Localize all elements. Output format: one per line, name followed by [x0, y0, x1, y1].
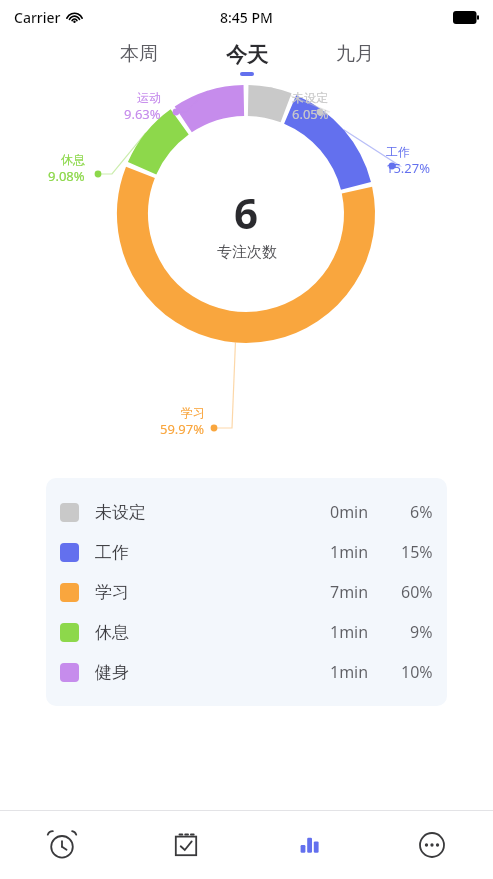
staticText: 1min: [330, 541, 369, 563]
button[interactable]: 健身: [46, 652, 447, 692]
button[interactable]: 未设定: [46, 492, 447, 532]
button[interactable]: 工作: [46, 532, 447, 572]
staticText: 健身: [95, 662, 129, 683]
staticText: 6%: [410, 501, 433, 523]
staticText: 60%: [401, 581, 433, 603]
button[interactable]: More: [370, 811, 493, 879]
staticText: 运动: [137, 90, 161, 105]
staticText: 9.08%: [48, 167, 85, 185]
staticText: 本周: [120, 42, 158, 66]
button[interactable]: 今天: [218, 40, 276, 78]
staticText: 今天: [226, 42, 268, 68]
staticText: 工作: [95, 542, 129, 563]
staticText: 6: [234, 184, 259, 241]
staticText: 59.97%: [160, 420, 205, 438]
staticText: 休息: [61, 152, 85, 167]
staticText: 未设定: [292, 90, 328, 105]
staticText: 休息: [95, 622, 129, 643]
button[interactable]: 本周: [112, 40, 166, 76]
staticText: 1min: [330, 621, 369, 643]
button[interactable]: Statistics: [247, 811, 370, 879]
staticText: 15.27%: [386, 159, 431, 177]
button[interactable]: 九月: [328, 40, 382, 76]
staticText: 6.05%: [292, 105, 329, 123]
staticText: 15%: [401, 541, 433, 563]
staticText: 九月: [336, 42, 374, 66]
button[interactable]: Timer: [0, 811, 124, 879]
staticText: 专注次数: [217, 243, 277, 262]
staticText: 学习: [181, 405, 205, 420]
staticText: 未设定: [95, 502, 146, 523]
staticText: 9%: [410, 621, 433, 643]
staticText: 0min: [330, 501, 369, 523]
staticText: 7min: [330, 581, 369, 603]
button[interactable]: 休息: [46, 612, 447, 652]
staticText: 1min: [330, 661, 369, 683]
staticText: 9.63%: [124, 105, 161, 123]
staticText: 10%: [401, 661, 433, 683]
button[interactable]: Tasks: [124, 811, 247, 879]
staticText: 工作: [386, 144, 410, 159]
staticText: 学习: [95, 582, 129, 603]
staticText: 8:45 PM: [220, 8, 273, 27]
button[interactable]: 学习: [46, 572, 447, 612]
staticText: Carrier: [14, 8, 61, 27]
